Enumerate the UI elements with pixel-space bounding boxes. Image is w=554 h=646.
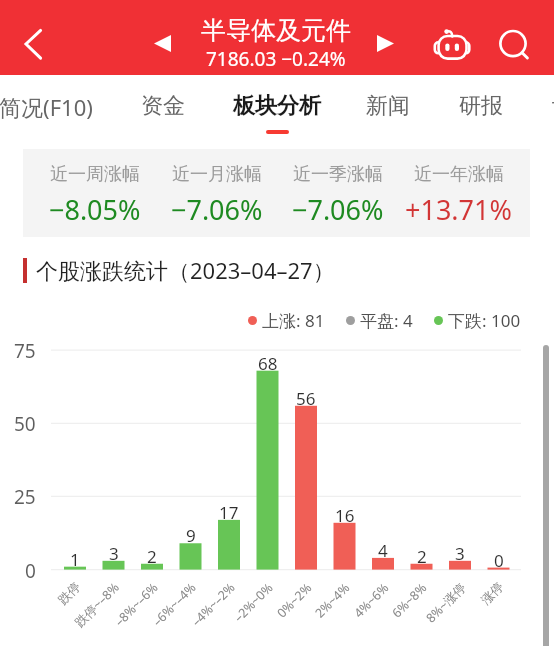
staticText: 简况(F10): [0, 92, 93, 122]
staticText: 75: [14, 338, 36, 364]
button[interactable]: 讨论: [516, 76, 554, 137]
staticText: 0%~2%: [273, 579, 316, 621]
staticText: 9: [186, 524, 196, 544]
staticText: 3: [109, 542, 119, 562]
staticText: 讨论: [552, 92, 554, 120]
button[interactable]: 新闻: [330, 76, 446, 137]
staticText: 6%~8%: [388, 579, 431, 621]
staticText: 半导体及元件: [201, 15, 351, 46]
staticText: 平盘: 4: [360, 309, 413, 332]
staticText: 涨停: [478, 579, 507, 608]
staticText: 7186.03 −0.24%: [206, 46, 346, 72]
button[interactable]: 资金: [105, 76, 221, 137]
staticText: 56: [296, 387, 316, 407]
staticText: 4%~6%: [350, 579, 393, 621]
staticText: 资金: [141, 92, 185, 120]
button[interactable]: 下跌: 100: [434, 309, 521, 332]
staticText: 近一周涨幅: [50, 163, 140, 186]
staticText: 4: [378, 539, 388, 559]
staticText: +13.71%: [405, 191, 512, 228]
staticText: 3: [455, 542, 465, 562]
staticText: 68: [258, 352, 278, 372]
button[interactable]: 近一季涨幅: [277, 149, 398, 237]
staticText: 2: [417, 545, 427, 565]
staticText: 2: [147, 545, 157, 565]
staticText: –8%~–6%: [111, 579, 162, 630]
staticText: 上涨: 81: [262, 309, 325, 332]
button[interactable]: 上涨: 81: [248, 309, 325, 332]
button[interactable]: 简况(F10): [0, 76, 104, 137]
staticText: −7.06%: [171, 191, 263, 228]
button[interactable]: AI Assistant: [430, 22, 474, 66]
button[interactable]: Search: [491, 22, 535, 66]
button[interactable]: 个股涨跌统计（2023–04–27）: [23, 255, 335, 285]
staticText: 下跌: 100: [448, 309, 521, 332]
button[interactable]: Next sector: [369, 27, 402, 60]
staticText: 板块分析: [233, 92, 321, 120]
button[interactable]: 研报: [423, 76, 539, 137]
staticText: 个股涨跌统计（2023–04–27）: [36, 255, 335, 285]
staticText: 新闻: [366, 92, 410, 120]
staticText: 16: [335, 504, 355, 524]
staticText: 17: [219, 501, 239, 521]
staticText: 1: [70, 548, 80, 568]
staticText: 50: [14, 411, 36, 437]
button[interactable]: 近一周涨幅: [34, 149, 156, 237]
button[interactable]: 近一年涨幅: [398, 149, 519, 237]
button[interactable]: 板块分析: [219, 76, 335, 137]
staticText: 25: [14, 484, 36, 510]
staticText: 近一季涨幅: [293, 163, 383, 186]
staticText: –2%~0%: [230, 579, 277, 626]
staticText: 跌停: [55, 579, 84, 608]
staticText: 近一月涨幅: [172, 163, 262, 186]
staticText: –6%~–4%: [149, 579, 200, 630]
button[interactable]: Back: [11, 22, 55, 66]
staticText: 近一年涨幅: [414, 163, 504, 186]
staticText: −8.05%: [49, 191, 141, 228]
button[interactable]: 半导体及元件: [186, 15, 366, 75]
button[interactable]: Previous sector: [146, 27, 179, 60]
staticText: 研报: [459, 92, 503, 120]
button[interactable]: 平盘: 4: [346, 309, 413, 332]
staticText: 2%~4%: [311, 579, 354, 621]
button[interactable]: 近一月涨幅: [156, 149, 277, 237]
staticText: –4%~–2%: [188, 579, 239, 630]
staticText: 0: [494, 549, 504, 569]
staticText: 0: [25, 558, 36, 584]
staticText: −7.06%: [292, 191, 384, 228]
staticText: 8%~涨停: [422, 579, 470, 626]
staticText: 跌停~–8%: [71, 579, 123, 631]
